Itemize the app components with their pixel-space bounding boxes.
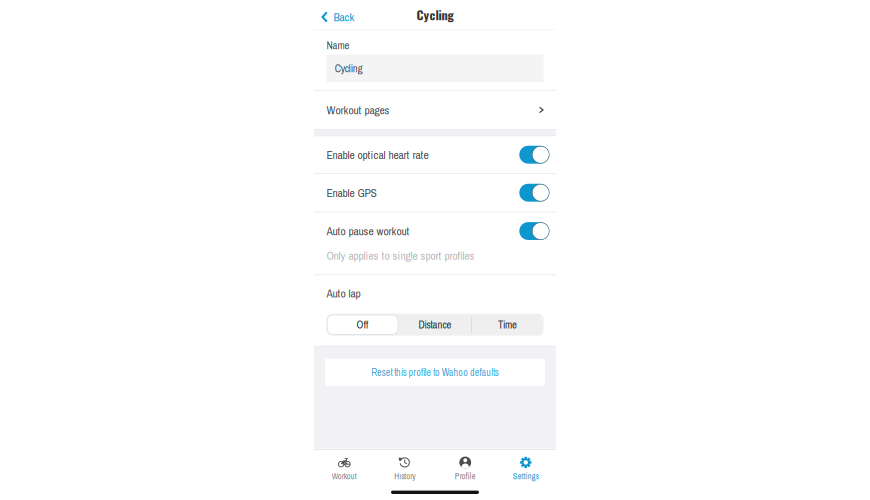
button[interactable]: Settings: [495, 450, 556, 482]
button[interactable]: Reset this profile to Wahoo defaults: [325, 359, 545, 386]
button[interactable]: Auto pause workout: [314, 212, 556, 250]
staticText: Auto pause workout: [326, 223, 409, 239]
staticText: Auto lap: [326, 286, 360, 301]
button[interactable]: History: [374, 450, 435, 482]
staticText: Only applies to single sport profiles: [326, 248, 474, 263]
button[interactable]: Workout: [314, 450, 374, 482]
staticText: Distance: [418, 317, 451, 332]
staticText: Name: [326, 38, 349, 52]
staticText: Profile: [455, 471, 476, 482]
staticText: Settings: [513, 471, 539, 482]
staticText: Enable optical heart rate: [326, 147, 428, 162]
staticText: Workout pages: [326, 102, 389, 118]
staticText: Off: [357, 317, 369, 332]
staticText: Cycling: [416, 6, 453, 24]
staticText: Back: [333, 9, 354, 25]
staticText: Enable GPS: [326, 185, 376, 200]
button[interactable]: Distance: [399, 314, 471, 336]
staticText: Time: [498, 317, 517, 332]
button[interactable]: Enable optical heart rate: [314, 136, 556, 173]
button[interactable]: Time: [471, 314, 544, 336]
button[interactable]: Off: [326, 314, 399, 336]
staticText: Workout: [332, 471, 357, 482]
staticText: History: [394, 471, 415, 482]
button[interactable]: Workout pages: [314, 91, 556, 129]
button[interactable]: Back: [314, 2, 363, 27]
button[interactable]: Enable GPS: [314, 174, 556, 211]
button[interactable]: Profile: [435, 450, 495, 482]
staticText: Cycling: [335, 61, 363, 76]
staticText: Reset this profile to Wahoo defaults: [371, 366, 499, 379]
